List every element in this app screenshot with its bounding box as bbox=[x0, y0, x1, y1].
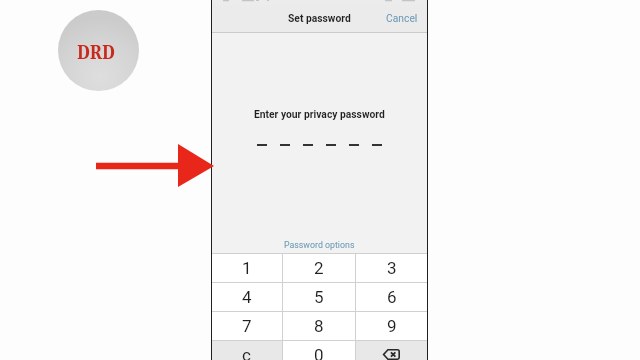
button[interactable]: Set password bbox=[288, 12, 351, 24]
staticText: c bbox=[242, 345, 251, 360]
staticText: DRD bbox=[77, 41, 115, 63]
button[interactable]: 9 bbox=[356, 312, 428, 340]
button[interactable]: 0 bbox=[283, 341, 355, 360]
staticText: 1 bbox=[242, 258, 252, 278]
button[interactable]: 3 bbox=[356, 254, 428, 282]
staticText: Enter your privacy password bbox=[254, 108, 385, 120]
button[interactable]: 2 bbox=[283, 254, 355, 282]
staticText: 7 bbox=[242, 316, 252, 336]
button[interactable]: 1 bbox=[211, 254, 282, 282]
staticText: 0 bbox=[314, 345, 324, 360]
button[interactable]: 6 bbox=[356, 283, 428, 311]
staticText: 6 bbox=[387, 287, 397, 307]
button[interactable]: Backspace bbox=[356, 341, 428, 360]
staticText: 9 bbox=[387, 316, 397, 336]
staticText: 3 bbox=[387, 258, 397, 278]
button[interactable]: 5 bbox=[283, 283, 355, 311]
button[interactable]: 4 bbox=[211, 283, 282, 311]
button[interactable]: Password options bbox=[284, 240, 355, 250]
button[interactable]: c bbox=[211, 341, 282, 360]
button[interactable]: 8 bbox=[283, 312, 355, 340]
staticText: 8 bbox=[314, 316, 324, 336]
button[interactable]: 7 bbox=[211, 312, 282, 340]
staticText: 4 bbox=[242, 287, 252, 307]
staticText: 5 bbox=[314, 287, 324, 307]
staticText: 2 bbox=[314, 258, 324, 278]
button[interactable]: Cancel bbox=[386, 12, 418, 24]
